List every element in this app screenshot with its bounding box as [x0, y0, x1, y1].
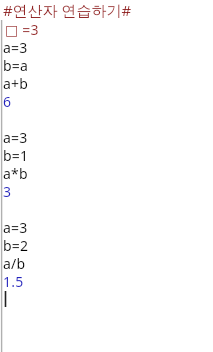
staticText: a*b [3, 164, 28, 182]
staticText: 1.5 [3, 272, 24, 290]
staticText: 6 [3, 92, 12, 110]
staticText: a=3 [3, 38, 28, 56]
staticText: #연산자 연습하기# [3, 0, 132, 20]
staticText: b=1 [3, 146, 29, 164]
staticText: 3 [3, 182, 12, 200]
staticText: a=3 [3, 128, 28, 146]
staticText: b=2 [3, 236, 29, 254]
staticText: b=a [3, 56, 29, 74]
staticText: □ =3 [5, 20, 39, 38]
staticText: a+b [3, 74, 29, 92]
staticText: a=3 [3, 218, 28, 236]
staticText: a/b [3, 254, 26, 272]
